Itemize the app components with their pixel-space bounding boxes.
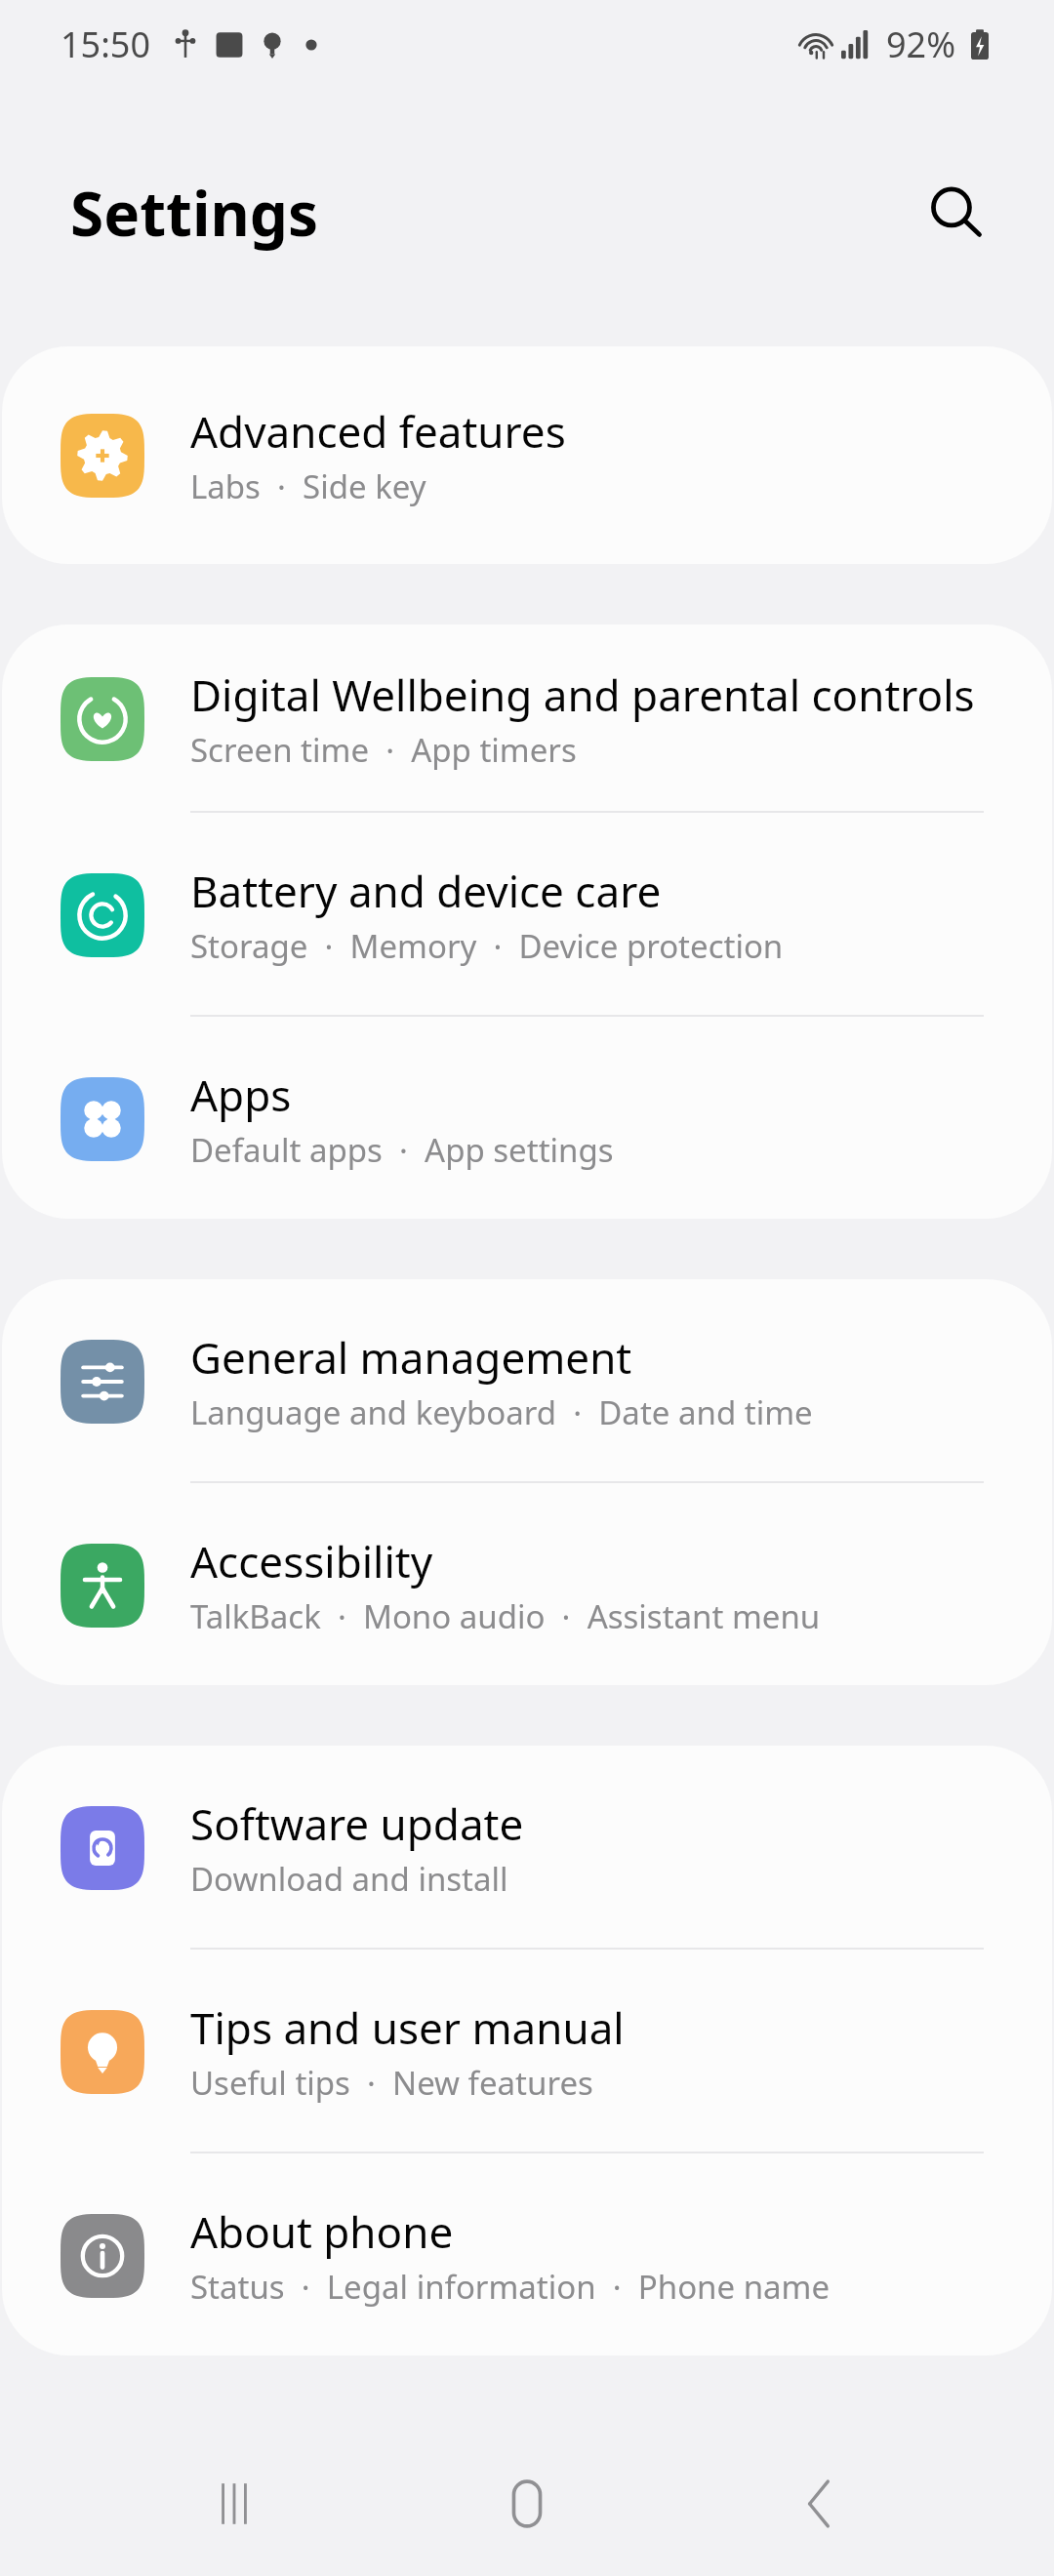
staticText: Apps (190, 1066, 292, 1124)
staticText: Download and install (190, 1857, 508, 1901)
staticText: Useful tips · New features (190, 2061, 593, 2105)
button[interactable]: Back (761, 2445, 878, 2562)
button[interactable]: Search (908, 164, 1005, 262)
staticText: Labs · Side key (190, 464, 426, 508)
staticText: Software update (190, 1794, 524, 1853)
button[interactable]: Advanced features (2, 346, 1052, 564)
button[interactable]: Digital Wellbeing and parental controls (2, 624, 1052, 811)
button[interactable]: General management (2, 1279, 1052, 1481)
staticText: Digital Wellbeing and parental controls (190, 665, 975, 724)
button[interactable]: Software update (2, 1746, 1052, 1948)
button[interactable]: Recents (176, 2445, 293, 2562)
button[interactable]: Tips and user manual (2, 1950, 1052, 2152)
staticText: Advanced features (190, 402, 566, 461)
staticText: Settings (70, 172, 319, 254)
button[interactable]: About phone (2, 2153, 1052, 2355)
staticText: About phone (190, 2202, 454, 2261)
button[interactable]: Battery and device care (2, 813, 1052, 1015)
staticText: Accessibility (190, 1532, 433, 1590)
staticText: 15:50 (61, 20, 151, 68)
button[interactable]: Home (468, 2445, 586, 2562)
staticText: Tips and user manual (190, 1998, 625, 2057)
staticText: General management (190, 1328, 632, 1387)
button[interactable]: Accessibility (2, 1483, 1052, 1685)
staticText: Default apps · App settings (190, 1128, 614, 1172)
staticText: Screen time · App timers (190, 728, 577, 772)
staticText: Language and keyboard · Date and time (190, 1390, 813, 1434)
staticText: Storage · Memory · Device protection (190, 924, 784, 968)
staticText: Status · Legal information · Phone name (190, 2265, 831, 2309)
staticText: TalkBack · Mono audio · Assistant menu (190, 1594, 821, 1638)
staticText: 92% (886, 20, 956, 68)
button[interactable]: Apps (2, 1017, 1052, 1219)
staticText: Battery and device care (190, 862, 662, 920)
